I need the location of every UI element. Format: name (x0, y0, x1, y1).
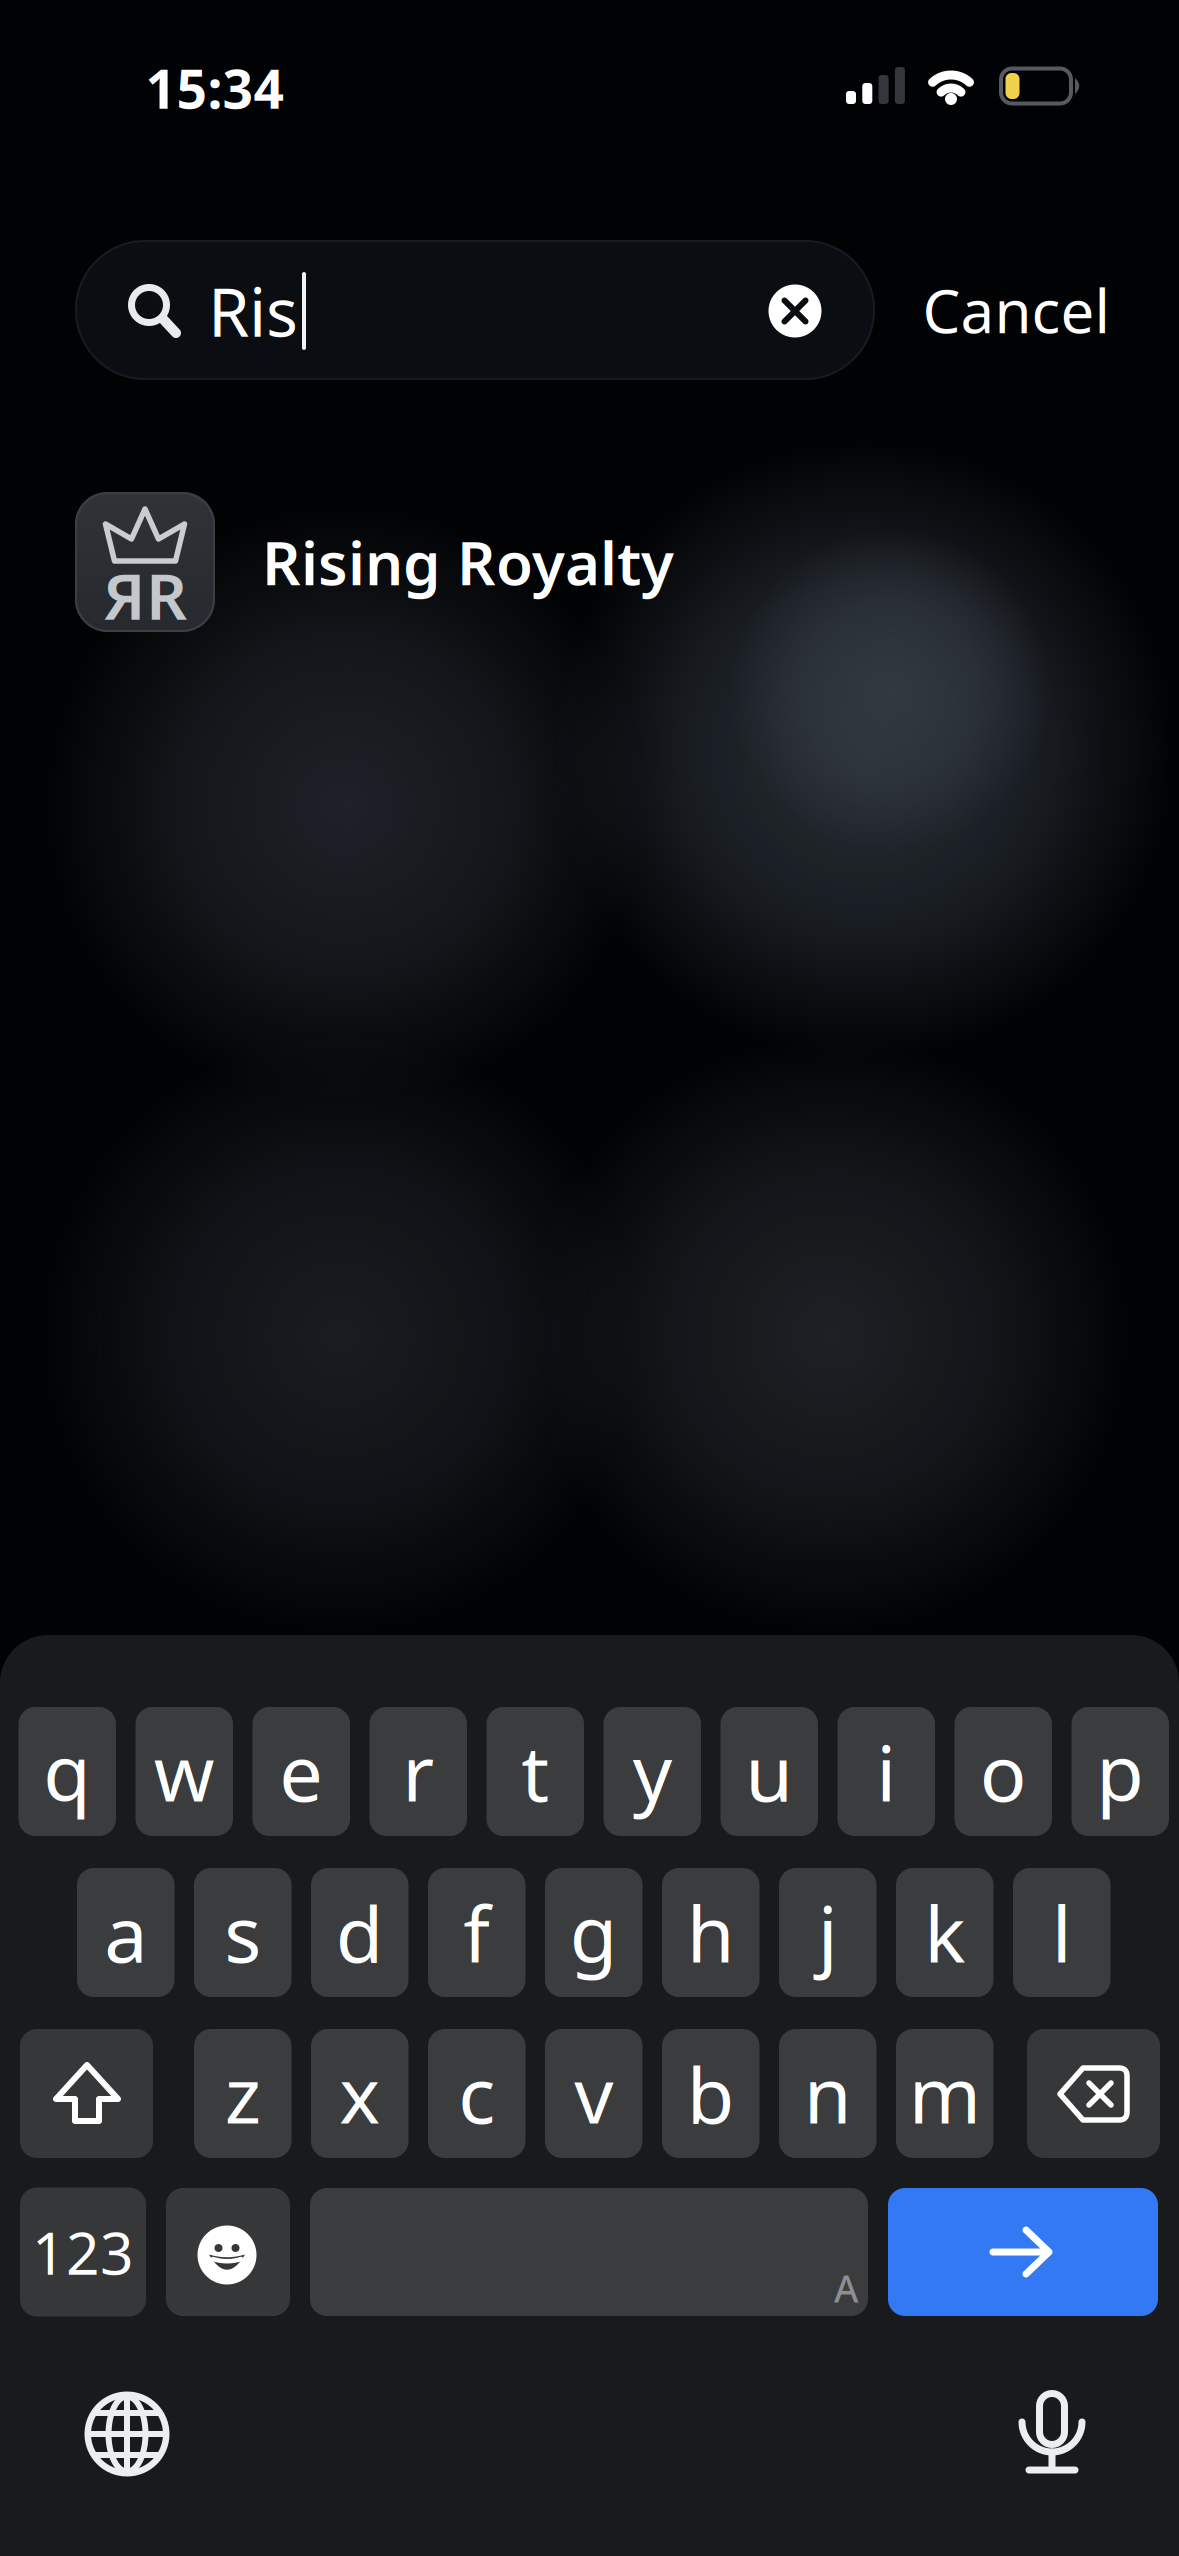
button[interactable]: u (720, 1707, 818, 1836)
staticText: o (980, 1720, 1027, 1823)
button[interactable]: l (1013, 1868, 1110, 1997)
button[interactable]: p (1071, 1707, 1169, 1836)
button[interactable]: j (779, 1868, 876, 1997)
button[interactable]: t (486, 1707, 584, 1836)
button[interactable]: o (954, 1707, 1052, 1836)
staticText: c (458, 2042, 495, 2145)
staticText: u (745, 1720, 793, 1823)
staticText: e (279, 1720, 323, 1823)
staticText: k (924, 1881, 965, 1984)
button[interactable]: x (311, 2029, 408, 2158)
staticText: A (834, 2263, 858, 2313)
staticText: t (521, 1720, 549, 1823)
button[interactable]: e (252, 1707, 350, 1836)
button[interactable]: m (896, 2029, 993, 2158)
staticText: j (818, 1881, 838, 1984)
staticText: ЯR (103, 552, 187, 637)
staticText: x (339, 2042, 380, 2145)
button[interactable]: ЯR (75, 482, 1179, 642)
staticText: q (43, 1720, 91, 1823)
button[interactable]: q (18, 1707, 116, 1836)
staticText: g (570, 1881, 618, 1984)
staticText: f (463, 1881, 490, 1984)
button[interactable]: y (603, 1707, 701, 1836)
button[interactable]: Space (310, 2188, 868, 2316)
staticText: s (224, 1881, 261, 1984)
button[interactable]: b (662, 2029, 759, 2158)
staticText: w (154, 1720, 215, 1823)
button[interactable]: Cancel (922, 270, 1109, 350)
staticText: Rising Royalty (262, 522, 674, 602)
button[interactable]: 123 (20, 2187, 146, 2316)
button[interactable]: Clear text (768, 284, 821, 337)
staticText: a (104, 1881, 147, 1984)
button[interactable]: Shift (20, 2029, 153, 2158)
staticText: v (574, 2042, 613, 2145)
button[interactable]: s (194, 1868, 291, 1997)
button[interactable]: w (135, 1707, 233, 1836)
staticText: z (225, 2042, 261, 2145)
button[interactable]: Ris (75, 240, 875, 380)
button[interactable]: r (369, 1707, 467, 1836)
button[interactable]: v (545, 2029, 642, 2158)
button[interactable]: h (662, 1868, 759, 1997)
staticText: n (804, 2042, 852, 2145)
button[interactable]: n (779, 2029, 876, 2158)
button[interactable]: z (194, 2029, 291, 2158)
button[interactable]: Emoji (166, 2188, 290, 2316)
staticText: h (687, 1881, 735, 1984)
staticText: l (1052, 1881, 1072, 1984)
button[interactable]: g (545, 1868, 642, 1997)
staticText: r (402, 1720, 434, 1823)
button[interactable]: Dictate (1020, 2384, 1084, 2476)
button[interactable]: d (311, 1868, 408, 1997)
staticText: Ris (208, 267, 298, 355)
staticText: b (687, 2042, 735, 2145)
staticText: m (909, 2042, 981, 2145)
button[interactable]: Next keyboard (84, 2391, 169, 2476)
staticText: i (876, 1720, 896, 1823)
button[interactable]: c (428, 2029, 525, 2158)
button[interactable]: Return (888, 2188, 1158, 2316)
staticText: 123 (32, 2213, 134, 2291)
button[interactable]: a (77, 1868, 174, 1997)
button[interactable]: Delete (1027, 2029, 1160, 2158)
button[interactable]: f (428, 1868, 525, 1997)
staticText: p (1096, 1720, 1144, 1823)
staticText: Cancel (922, 270, 1109, 350)
button[interactable]: i (837, 1707, 935, 1836)
staticText: 15:34 (145, 53, 284, 123)
staticText: y (633, 1720, 672, 1823)
button[interactable]: k (896, 1868, 993, 1997)
staticText: d (336, 1881, 384, 1984)
